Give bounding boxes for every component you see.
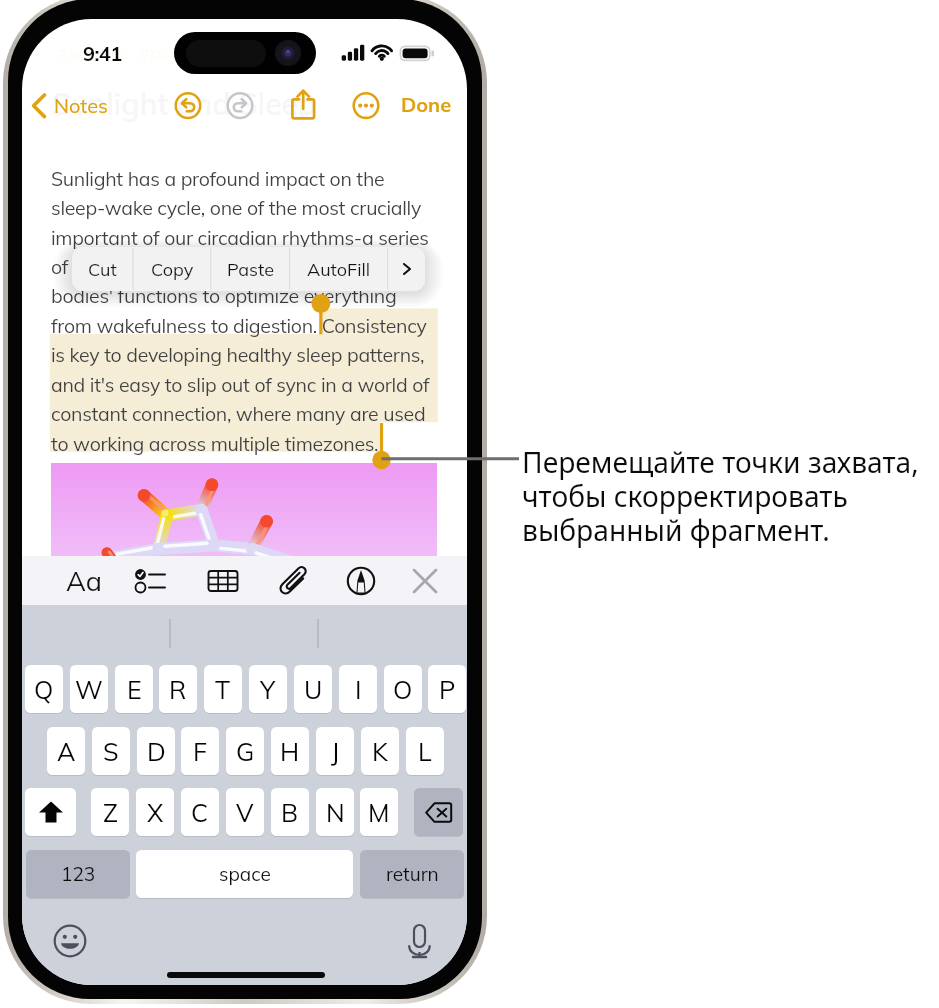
button[interactable]: S [92,727,130,775]
button[interactable]: W [70,665,108,713]
staticText: C [191,797,209,828]
staticText: constant connection, where many are used [51,401,426,425]
staticText: Sunlight has a profound impact on the [51,166,385,190]
button[interactable]: Undo [170,88,206,124]
staticText: S [103,736,119,767]
staticText: L [418,736,432,767]
staticText: bodies' functions to optimize everything [51,283,397,307]
staticText: U [304,674,323,705]
button[interactable]: space [136,850,353,898]
staticText: Q [34,674,54,705]
button[interactable]: T [204,665,242,713]
staticText: important of our circadian rhythms-a ser… [51,225,429,249]
button[interactable]: Close [401,556,449,606]
staticText: P [439,674,456,705]
staticText: Sunlight and Sleep [52,85,317,123]
button[interactable]: Markup [337,556,385,606]
button[interactable]: Checklist [127,556,175,606]
staticText: Cut [88,258,117,281]
staticText: Y [260,674,276,705]
staticText: X [147,797,164,828]
button[interactable]: Text format [60,556,108,606]
staticText: Notes [54,93,108,118]
staticText: 9:41 [83,41,122,66]
button[interactable]: Z [91,788,129,836]
button[interactable]: G [226,727,264,775]
staticText: Z [103,797,118,828]
button[interactable]: E [115,665,153,713]
staticText: #science #psychology [58,41,244,64]
button[interactable]: N [316,788,354,836]
staticText: sleep-wake cycle, one of the most crucia… [51,195,422,219]
button[interactable]: O [384,665,422,713]
button[interactable]: D [137,727,175,775]
button[interactable]: AutoFill [290,247,388,291]
button[interactable]: B [271,788,309,836]
staticText: W [75,674,103,705]
staticText: Done [401,92,452,117]
button[interactable]: P [428,665,466,713]
staticText: чтобы скорректировать [522,477,848,515]
staticText: A [57,736,76,767]
button[interactable]: C [181,788,219,836]
button[interactable]: Done [397,91,453,119]
button[interactable]: 123 [26,850,130,898]
staticText: H [280,736,300,767]
button[interactable]: Redo [222,88,258,124]
staticText: Перемещайте точки захвата, [522,443,919,481]
button[interactable]: L [406,727,444,775]
button[interactable]: Q [25,665,63,713]
button[interactable]: K [361,727,399,775]
button[interactable]: Cut [72,247,133,291]
staticText: G [236,736,255,767]
staticText: to working across multiple timezones. [51,431,379,455]
button[interactable]: Share [288,85,324,121]
staticText: 123 [61,862,96,886]
staticText: O [393,674,413,705]
staticText: Copy [151,258,194,281]
staticText: N [326,797,345,828]
button[interactable]: More options [348,88,384,124]
staticText: M [368,797,390,828]
button[interactable]: Paste [211,247,290,291]
button[interactable]: M [360,788,398,836]
button[interactable]: Emoji keyboard [53,924,87,958]
button[interactable]: H [271,727,309,775]
staticText: I [355,674,362,705]
staticText: V [236,797,254,828]
staticText: J [331,736,340,767]
staticText: is key to developing healthy sleep patte… [51,342,425,366]
staticText: of processes that regulate many of our [51,254,387,278]
staticText: E [127,674,142,705]
button[interactable]: Copy [133,247,211,291]
button[interactable]: Dictation [402,923,436,959]
staticText: T [215,674,231,705]
staticText: B [281,797,299,828]
button[interactable]: X [136,788,174,836]
staticText: R [169,674,187,705]
button[interactable]: Shift [25,788,76,836]
staticText: F [193,736,208,767]
button[interactable]: I [339,665,377,713]
button[interactable]: J [316,727,354,775]
staticText: from wakefulness to digestion. Consisten… [51,313,427,337]
button[interactable]: R [159,665,197,713]
staticText: return [386,862,439,886]
button[interactable]: return [360,850,464,898]
staticText: Paste [227,258,274,281]
button[interactable]: Notes [26,91,118,129]
button[interactable]: More actions [388,247,425,291]
button[interactable]: F [181,727,219,775]
button[interactable]: Attach file [271,556,319,606]
button[interactable]: Table [199,556,247,606]
staticText: K [372,736,388,767]
button[interactable]: Y [249,665,287,713]
staticText: D [147,736,166,767]
button[interactable]: U [294,665,332,713]
staticText: and it's easy to slip out of sync in a w… [51,372,430,396]
staticText: выбранный фрагмент. [522,511,830,549]
staticText: space [219,862,271,886]
button[interactable]: Backspace [414,788,463,836]
button[interactable]: V [226,788,264,836]
button[interactable]: A [47,727,85,775]
